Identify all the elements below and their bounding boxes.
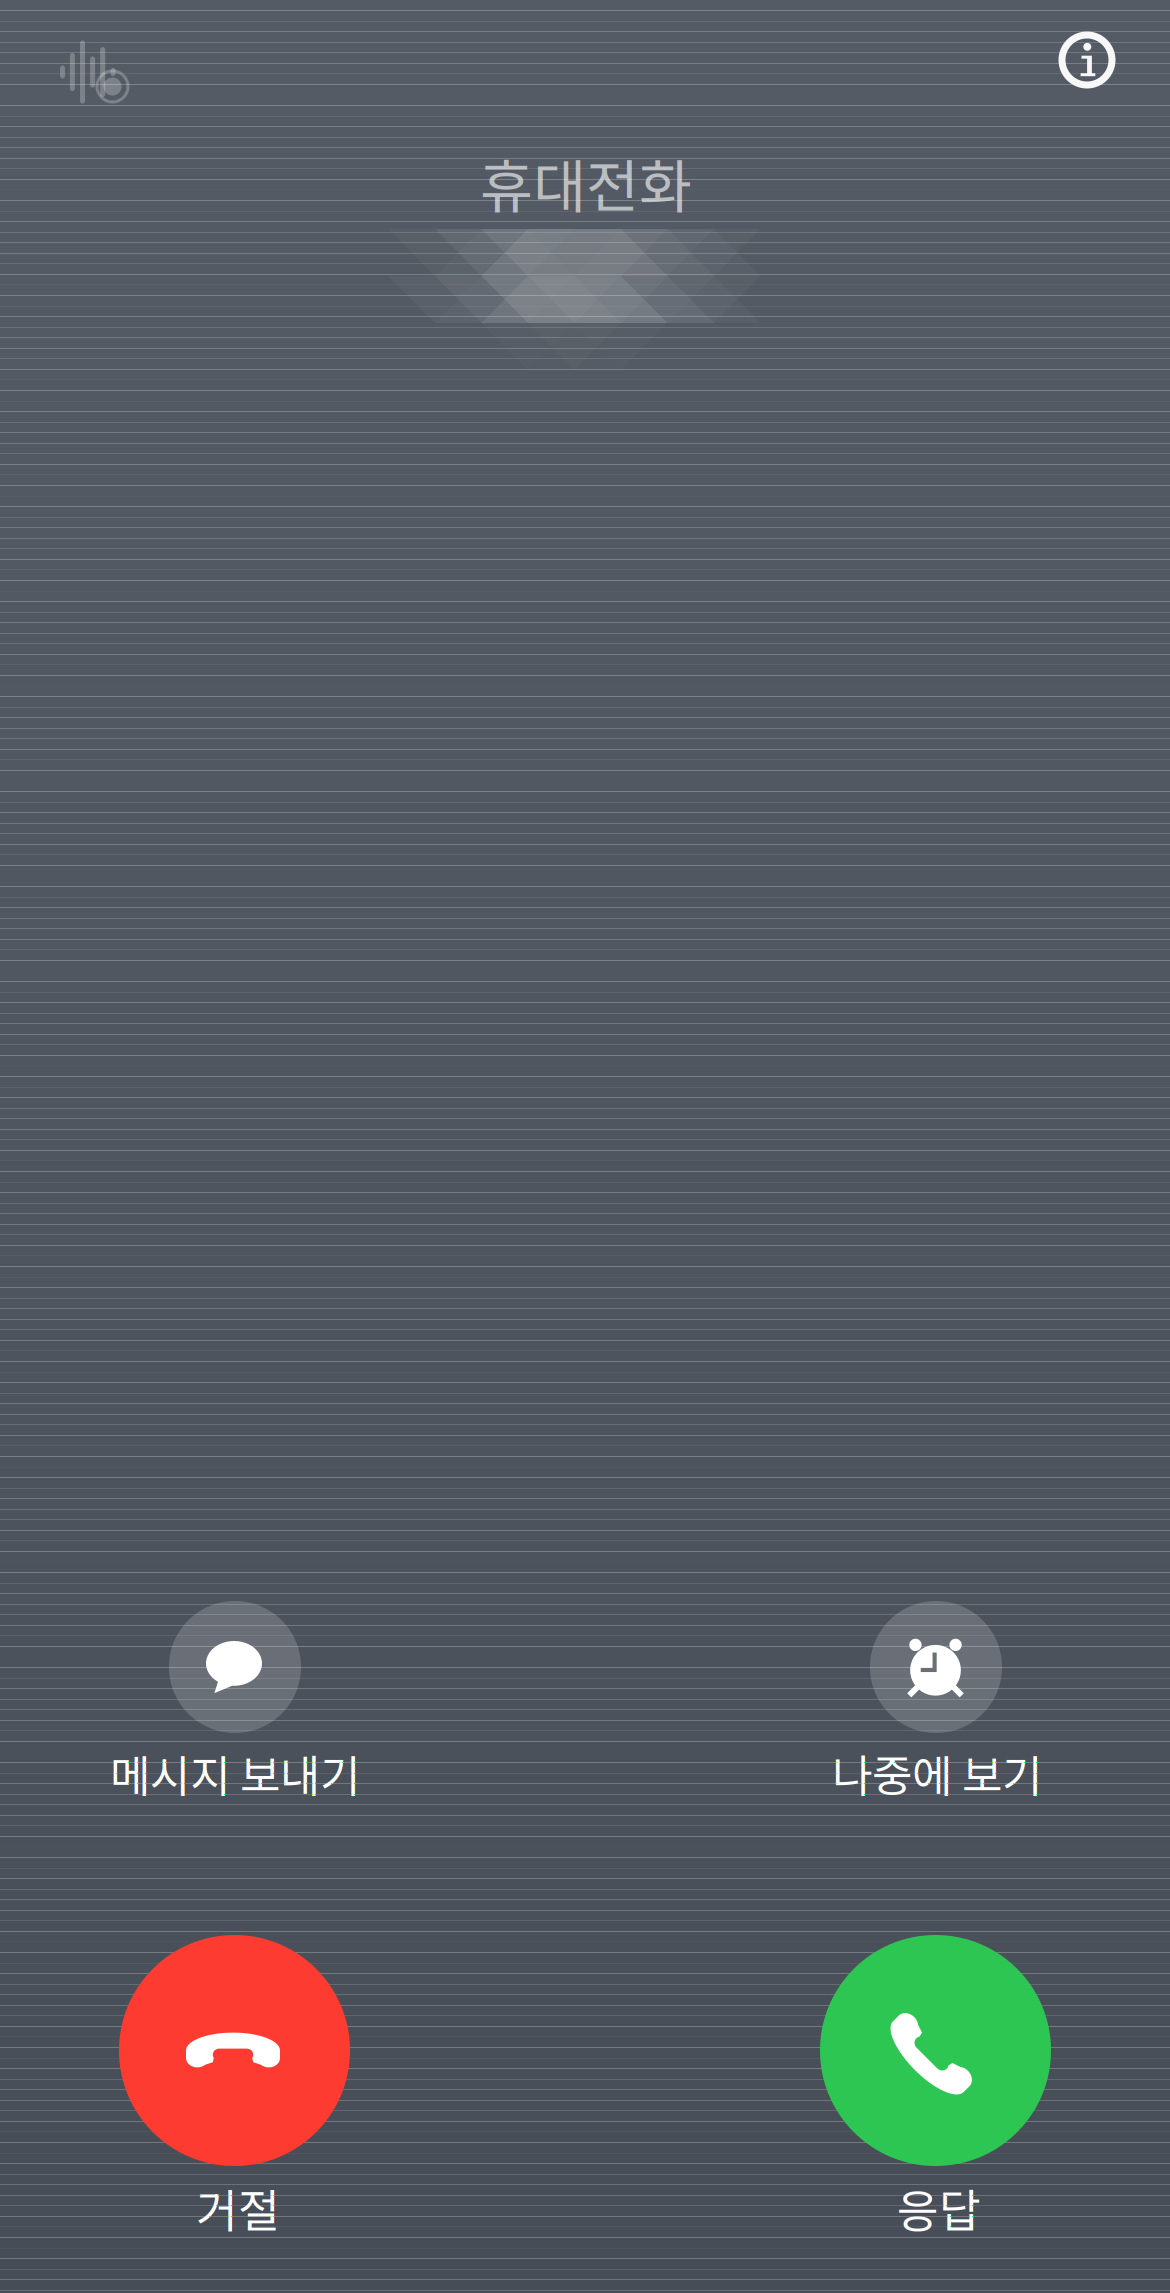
staticText: 거절 xyxy=(196,2175,280,2241)
button[interactable]: 메시지 보내기 xyxy=(110,1601,374,1801)
staticText: 응답 xyxy=(897,2175,981,2241)
staticText: 나중에 보기 xyxy=(832,1741,1042,1805)
button[interactable]: 거절 xyxy=(79,1935,390,2235)
button[interactable]: 나중에 보기 xyxy=(832,1601,1132,1801)
button[interactable]: Call info xyxy=(1039,12,1135,108)
staticText: 휴대전화 xyxy=(480,141,692,224)
button[interactable]: 응답 xyxy=(820,1935,1131,2235)
staticText: 메시지 보내기 xyxy=(110,1741,360,1805)
